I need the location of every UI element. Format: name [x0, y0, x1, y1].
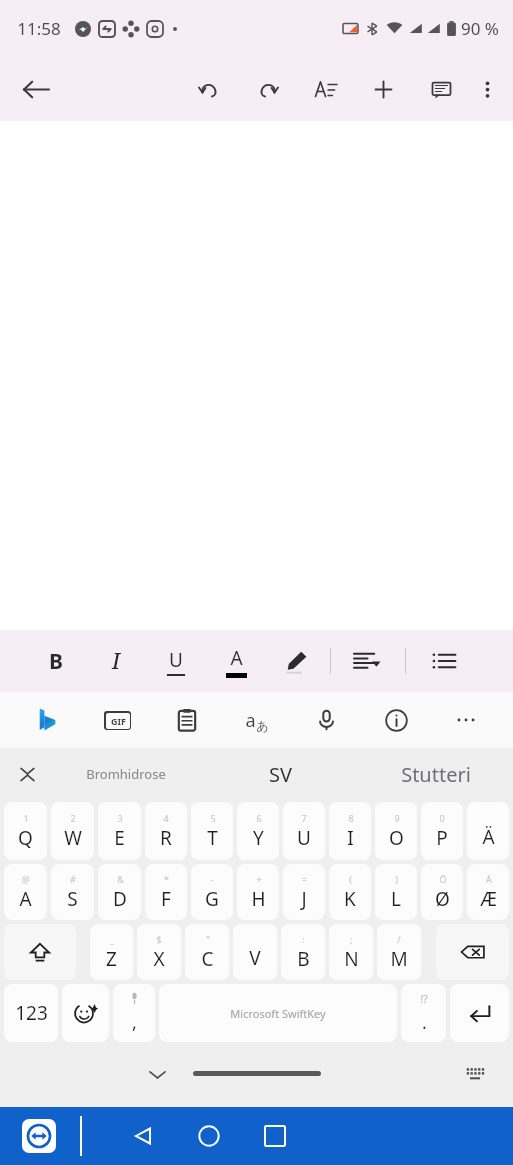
button[interactable]: Undo [185, 65, 233, 113]
staticText: P [436, 825, 448, 851]
staticText: Y [253, 825, 264, 851]
staticText: ; [350, 933, 353, 945]
button[interactable]: Backspace [436, 924, 509, 980]
button[interactable]: V [233, 924, 277, 980]
button[interactable]: 8 [329, 802, 371, 860]
staticText: 3 [117, 812, 123, 824]
button[interactable]: B [34, 639, 78, 683]
button[interactable]: Bulleted list [420, 637, 468, 685]
staticText: Ø [435, 886, 450, 912]
staticText: _ [110, 933, 114, 945]
button[interactable]: Recents [242, 1107, 308, 1165]
staticText: Ö [439, 873, 447, 885]
button[interactable]: ( [329, 864, 371, 920]
button[interactable]: Insert [359, 65, 407, 113]
button[interactable]: Clipboard [164, 697, 210, 743]
button[interactable]: U [154, 639, 198, 683]
staticText: V [249, 945, 261, 971]
button[interactable]: : [281, 924, 325, 980]
button[interactable]: Period [401, 984, 446, 1042]
button[interactable]: Alignment [343, 637, 391, 685]
button[interactable]: Translate [234, 697, 280, 743]
staticText: Ä [482, 824, 495, 850]
button[interactable]: Ö [421, 864, 463, 920]
button[interactable]: TeamViewer [22, 1119, 56, 1153]
button[interactable]: = [283, 864, 325, 920]
button[interactable]: # [51, 864, 94, 920]
button[interactable]: Collapse [8, 755, 46, 793]
button[interactable]: " [185, 924, 229, 980]
staticText: Q [18, 825, 33, 851]
button[interactable]: / [377, 924, 421, 980]
button[interactable]: Ä [467, 864, 509, 920]
staticText: + [256, 873, 262, 885]
staticText: : [302, 933, 305, 945]
button[interactable]: + [237, 864, 279, 920]
staticText: D [113, 886, 127, 912]
button[interactable]: SV [203, 748, 358, 800]
button[interactable]: More options [469, 65, 505, 113]
staticText: O [389, 825, 404, 851]
button[interactable]: 4 [145, 802, 187, 860]
staticText: $ [156, 933, 162, 945]
button[interactable]: ; [329, 924, 373, 980]
button[interactable]: More [443, 697, 489, 743]
button[interactable]: 6 [237, 802, 279, 860]
button[interactable]: $ [137, 924, 181, 980]
button[interactable]: 1 [4, 802, 47, 860]
button[interactable]: 9 [375, 802, 417, 860]
button[interactable]: Emoji [62, 984, 109, 1042]
staticText: U [169, 647, 183, 673]
button[interactable]: Microsoft SwiftKey [159, 984, 397, 1042]
button[interactable]: _ [90, 924, 133, 980]
staticText: X [153, 946, 165, 972]
staticText: K [344, 886, 356, 912]
button[interactable]: Comments [417, 65, 465, 113]
button[interactable]: Info [373, 697, 419, 743]
button[interactable]: Stutteri [358, 748, 513, 800]
button[interactable]: Back [12, 65, 60, 113]
button[interactable]: Voice input [303, 697, 349, 743]
button[interactable]: Text colour [214, 639, 258, 683]
staticText: 2 [70, 812, 76, 824]
button[interactable]: ) [375, 864, 417, 920]
button[interactable]: Redo [243, 65, 291, 113]
staticText: 11:58 [17, 17, 61, 40]
staticText: J [301, 886, 307, 912]
button[interactable]: 5 [191, 802, 233, 860]
staticText: S [67, 886, 78, 912]
button[interactable]: GIF [94, 697, 140, 743]
staticText: I [347, 825, 354, 851]
button[interactable]: 3 [98, 802, 141, 860]
staticText: I [112, 647, 120, 676]
button[interactable]: & [98, 864, 141, 920]
button[interactable]: Enter [450, 984, 509, 1042]
button[interactable]: 2 [51, 802, 94, 860]
button[interactable]: I [94, 639, 138, 683]
button[interactable]: 7 [283, 802, 325, 860]
button[interactable]: Highlight [274, 639, 318, 683]
staticText: B [49, 647, 63, 676]
staticText: & [117, 873, 124, 885]
button[interactable]: Bromhidrose [48, 748, 203, 800]
staticText: T [207, 825, 218, 851]
button[interactable]: Text formatting [301, 65, 349, 113]
staticText: 9 [394, 812, 400, 824]
button[interactable]: Change keyboard [459, 1058, 491, 1090]
button[interactable]: 0 [421, 802, 463, 860]
button[interactable]: @ [4, 864, 47, 920]
button[interactable]: - [191, 864, 233, 920]
button[interactable]: Ä [467, 802, 509, 860]
staticText: N [344, 946, 359, 972]
staticText: !? [420, 992, 428, 1006]
button[interactable]: Shift [4, 924, 76, 980]
button[interactable]: Back [110, 1107, 176, 1165]
button[interactable]: * [145, 864, 187, 920]
button[interactable]: Home [176, 1107, 242, 1165]
button[interactable]: 123 [4, 984, 58, 1042]
button[interactable]: Bing search [24, 697, 70, 743]
staticText: E [114, 825, 125, 851]
button[interactable]: Hide keyboard [137, 1054, 177, 1094]
button[interactable]: Comma, voice [113, 984, 155, 1042]
